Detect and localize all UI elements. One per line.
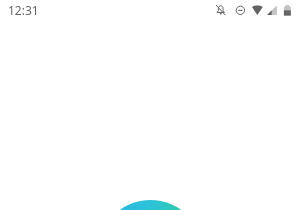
other: App logo <box>0 0 300 210</box>
staticText: 12:31 <box>8 2 39 18</box>
other: System status icons <box>0 0 300 22</box>
